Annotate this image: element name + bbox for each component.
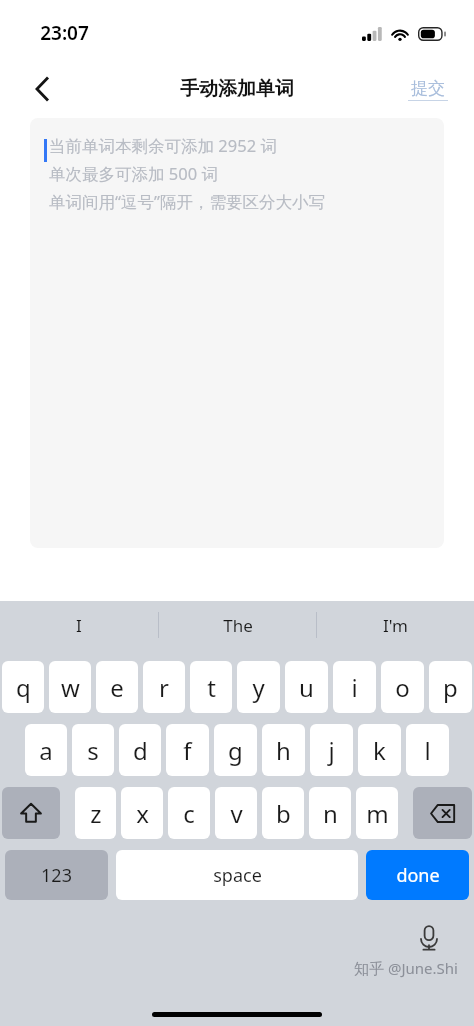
button[interactable]: a bbox=[25, 724, 67, 776]
staticText: l bbox=[424, 734, 431, 767]
button[interactable]: 提交 bbox=[404, 72, 452, 107]
button[interactable]: b bbox=[262, 787, 304, 839]
button[interactable]: Backspace bbox=[413, 787, 472, 839]
button[interactable]: w bbox=[49, 661, 91, 713]
button[interactable]: o bbox=[381, 661, 424, 713]
staticText: z bbox=[90, 797, 102, 830]
staticText: e bbox=[110, 671, 124, 704]
staticText: 单次最多可添加 500 词 bbox=[49, 162, 218, 185]
staticText: i bbox=[351, 671, 358, 704]
button[interactable]: done bbox=[366, 850, 469, 900]
button[interactable]: e bbox=[96, 661, 138, 713]
button[interactable]: Back bbox=[18, 65, 66, 113]
staticText: m bbox=[366, 797, 389, 830]
button[interactable]: d bbox=[119, 724, 161, 776]
staticText: h bbox=[276, 734, 291, 767]
button[interactable]: r bbox=[143, 661, 185, 713]
staticText: 手动添加单词 bbox=[180, 77, 294, 101]
staticText: b bbox=[276, 797, 291, 830]
button[interactable]: space bbox=[116, 850, 358, 900]
button[interactable]: Voice input bbox=[412, 922, 446, 956]
staticText: space bbox=[213, 863, 262, 888]
button[interactable]: k bbox=[358, 724, 401, 776]
staticText: 23:07 bbox=[40, 20, 89, 46]
button[interactable]: 123 bbox=[5, 850, 108, 900]
staticText: n bbox=[323, 797, 338, 830]
staticText: o bbox=[395, 671, 410, 704]
button[interactable]: f bbox=[166, 724, 209, 776]
button[interactable]: x bbox=[121, 787, 163, 839]
button[interactable]: u bbox=[285, 661, 328, 713]
staticText: s bbox=[87, 734, 99, 767]
button[interactable]: p bbox=[429, 661, 472, 713]
staticText: x bbox=[136, 797, 149, 830]
staticText: u bbox=[299, 671, 314, 704]
staticText: c bbox=[183, 797, 195, 830]
button[interactable]: l bbox=[406, 724, 449, 776]
button[interactable]: c bbox=[168, 787, 210, 839]
staticText: I bbox=[76, 614, 82, 637]
button[interactable]: y bbox=[237, 661, 280, 713]
button[interactable]: t bbox=[190, 661, 232, 713]
button[interactable]: I'm bbox=[317, 601, 474, 649]
staticText: 单词间用“逗号”隔开，需要区分大小写 bbox=[49, 190, 325, 213]
button[interactable]: n bbox=[309, 787, 351, 839]
staticText: g bbox=[228, 734, 243, 767]
button[interactable]: Shift bbox=[2, 787, 60, 839]
staticText: 123 bbox=[41, 863, 72, 888]
staticText: j bbox=[328, 734, 335, 767]
button[interactable]: j bbox=[310, 724, 353, 776]
staticText: t bbox=[207, 671, 216, 704]
button[interactable]: q bbox=[2, 661, 44, 713]
button[interactable]: g bbox=[214, 724, 257, 776]
staticText: w bbox=[61, 671, 80, 704]
staticText: 提交 bbox=[411, 78, 445, 99]
staticText: done bbox=[396, 863, 440, 888]
button[interactable]: i bbox=[333, 661, 376, 713]
staticText: r bbox=[159, 671, 169, 704]
button[interactable]: s bbox=[72, 724, 114, 776]
button[interactable]: z bbox=[75, 787, 116, 839]
staticText: The bbox=[223, 614, 253, 637]
staticText: 当前单词本剩余可添加 2952 词 bbox=[49, 134, 277, 157]
button[interactable]: I bbox=[0, 601, 158, 649]
staticText: p bbox=[443, 671, 458, 704]
button[interactable]: h bbox=[262, 724, 305, 776]
button[interactable]: 当前单词本剩余可添加 2952 词 bbox=[30, 118, 444, 548]
button[interactable]: m bbox=[356, 787, 398, 839]
staticText: q bbox=[16, 671, 31, 704]
staticText: 知乎 @June.Shi bbox=[354, 958, 458, 978]
staticText: k bbox=[373, 734, 386, 767]
staticText: f bbox=[183, 734, 192, 767]
button[interactable]: v bbox=[215, 787, 257, 839]
staticText: d bbox=[133, 734, 148, 767]
staticText: I'm bbox=[383, 614, 408, 637]
staticText: a bbox=[39, 734, 53, 767]
staticText: v bbox=[230, 797, 243, 830]
button[interactable]: The bbox=[159, 601, 316, 649]
staticText: y bbox=[252, 671, 265, 704]
